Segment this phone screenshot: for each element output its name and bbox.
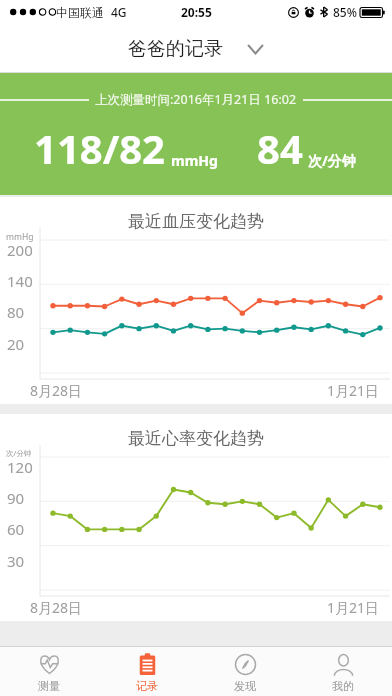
staticText: 90	[7, 488, 25, 508]
staticText: 84	[257, 121, 303, 175]
staticText: 120	[7, 457, 33, 477]
staticText: 140	[7, 271, 33, 291]
staticText: 发现	[234, 679, 256, 693]
staticText: 200	[7, 240, 33, 260]
staticText: 118/82	[34, 121, 165, 175]
staticText: 8月28日	[30, 381, 83, 400]
button[interactable]: 测量	[0, 647, 98, 696]
staticText: 我的	[332, 679, 354, 693]
button[interactable]: 我的	[294, 647, 392, 696]
staticText: 次/分钟	[308, 151, 356, 170]
staticText: 记录	[136, 679, 158, 693]
button[interactable]: 最近血压变化趋势	[0, 197, 392, 404]
other: Select profile	[247, 44, 264, 55]
staticText: 上次测量时间:2016年1月21日 16:02	[95, 91, 297, 108]
staticText: 80	[7, 302, 25, 322]
staticText: 1月21日	[327, 598, 380, 617]
staticText: 30	[7, 551, 25, 571]
staticText: 1月21日	[327, 381, 380, 400]
staticText: 中国联通	[56, 5, 104, 20]
button[interactable]: 发现	[196, 647, 294, 696]
staticText: 85%	[333, 4, 357, 20]
button[interactable]: 最近心率变化趋势	[0, 414, 392, 621]
staticText: 60	[7, 519, 25, 539]
staticText: 20:55	[181, 4, 212, 20]
button[interactable]: 记录	[98, 647, 196, 696]
staticText: 爸爸的记录	[128, 37, 223, 61]
staticText: 最近血压变化趋势	[128, 211, 264, 232]
button[interactable]: 爸爸的记录	[0, 24, 392, 73]
staticText: 次/分钟	[6, 448, 32, 458]
staticText: 8月28日	[30, 598, 83, 617]
staticText: 4G	[111, 4, 127, 20]
staticText: 测量	[38, 679, 60, 693]
staticText: mmHg	[171, 151, 218, 170]
staticText: 最近心率变化趋势	[128, 428, 264, 449]
staticText: mmHg	[6, 231, 34, 243]
staticText: 20	[7, 334, 25, 354]
